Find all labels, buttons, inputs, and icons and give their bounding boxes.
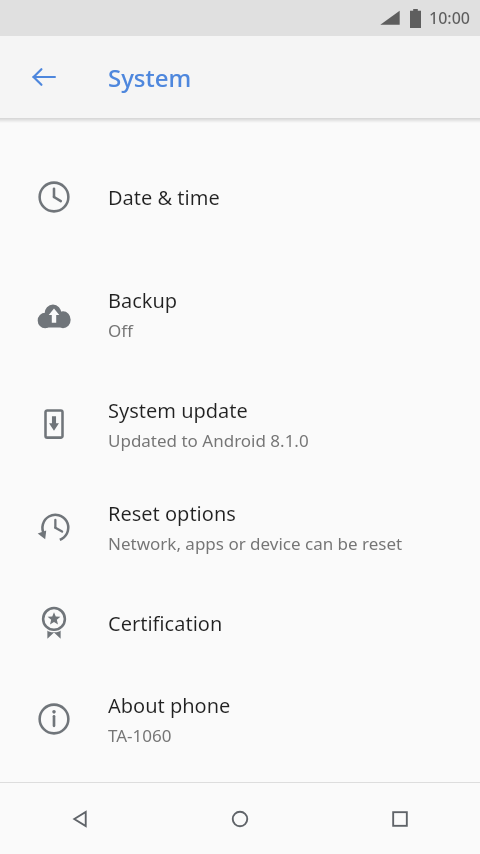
button[interactable]: Recents xyxy=(320,783,480,854)
staticText: About phone xyxy=(108,692,231,719)
staticText: Network, apps or device can be reset xyxy=(108,532,403,555)
button[interactable]: System update xyxy=(0,369,480,479)
staticText: Backup xyxy=(108,287,178,314)
button[interactable]: Certification xyxy=(0,575,480,671)
button[interactable]: Date & time xyxy=(0,135,480,259)
staticText: Date & time xyxy=(108,184,220,211)
staticText: Certification xyxy=(108,610,223,637)
staticText: Off xyxy=(108,319,133,342)
staticText: System update xyxy=(108,397,248,424)
staticText: 10:00 xyxy=(429,7,470,29)
button[interactable]: Backup xyxy=(0,259,480,369)
button[interactable]: Back xyxy=(20,53,68,101)
button[interactable]: About phone xyxy=(0,671,480,767)
button[interactable]: Reset options xyxy=(0,479,480,575)
staticText: System xyxy=(108,61,192,94)
staticText: Reset options xyxy=(108,500,236,527)
staticText: Updated to Android 8.1.0 xyxy=(108,429,309,452)
button[interactable]: Back xyxy=(0,783,160,854)
staticText: TA-1060 xyxy=(108,724,172,747)
button[interactable]: Home xyxy=(160,783,320,854)
